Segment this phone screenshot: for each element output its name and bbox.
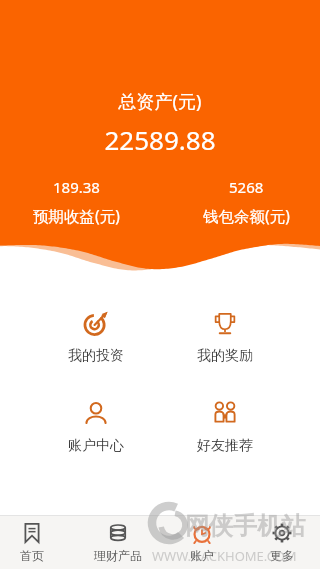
staticText: 好友推荐 — [197, 437, 253, 455]
staticText: 首页 — [20, 548, 44, 563]
button[interactable]: 我的奖励 — [175, 311, 275, 365]
button[interactable]: 好友推荐 — [175, 401, 275, 455]
staticText: WWW.HACKHOME.COM — [152, 547, 297, 565]
staticText: 总资产(元) — [0, 89, 320, 114]
staticText: 预期收益(元) — [33, 205, 120, 226]
button[interactable]: 首页 — [0, 522, 69, 563]
staticText: 账户 — [190, 548, 214, 563]
staticText: 账户中心 — [68, 437, 124, 455]
staticText: 5268 — [229, 177, 264, 197]
staticText: 22589.88 — [0, 122, 320, 157]
button[interactable]: 我的投资 — [46, 311, 146, 365]
button[interactable]: 理财产品 — [81, 522, 155, 563]
staticText: 网侠手机站 — [185, 511, 305, 541]
button[interactable]: 账户 — [165, 522, 239, 563]
staticText: 我的投资 — [68, 347, 124, 365]
staticText: 理财产品 — [94, 548, 142, 563]
staticText: 钱包余额(元) — [203, 205, 290, 226]
staticText: 我的奖励 — [197, 347, 253, 365]
button[interactable]: 更多 — [245, 522, 319, 563]
button[interactable]: 账户中心 — [46, 401, 146, 455]
staticText: 189.38 — [53, 177, 100, 197]
staticText: 更多 — [270, 548, 294, 563]
